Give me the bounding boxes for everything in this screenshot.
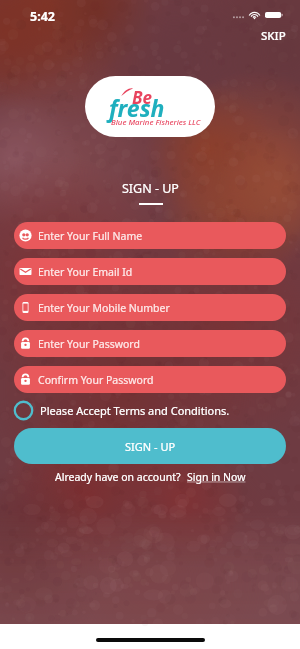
staticText: SKIP xyxy=(261,28,286,44)
staticText: Enter Your Password xyxy=(38,337,140,351)
staticText: SIGN - UP xyxy=(122,180,179,197)
button[interactable]: Skip xyxy=(255,25,292,47)
staticText: Enter Your Email Id xyxy=(38,265,133,279)
staticText: 5:42 xyxy=(30,8,55,25)
staticText: fresh xyxy=(109,92,165,123)
staticText: Enter Your Full Name xyxy=(38,229,143,243)
staticText: Please Accept Terms and Conditions. xyxy=(40,403,230,418)
staticText: Blue Marine Fisheries LLC xyxy=(111,117,201,128)
button[interactable]: Enter Your Full Name xyxy=(14,222,286,249)
button[interactable]: SIGN - UP xyxy=(14,428,286,464)
staticText: Enter Your Mobile Number xyxy=(38,301,170,315)
button[interactable]: Confirm Your Password xyxy=(14,366,286,393)
button[interactable]: Enter Your Email Id xyxy=(14,258,286,285)
button[interactable]: Sign in Now xyxy=(187,470,246,484)
staticText: SIGN - UP xyxy=(125,439,176,454)
staticText: Be xyxy=(132,86,153,109)
staticText: Confirm Your Password xyxy=(38,373,154,387)
button[interactable]: Please Accept Terms and Conditions. xyxy=(14,398,286,422)
staticText: Already have on account? xyxy=(55,470,181,484)
button[interactable]: Enter Your Password xyxy=(14,330,286,357)
button[interactable]: Enter Your Mobile Number xyxy=(14,294,286,321)
staticText: Sign in Now xyxy=(187,470,246,484)
